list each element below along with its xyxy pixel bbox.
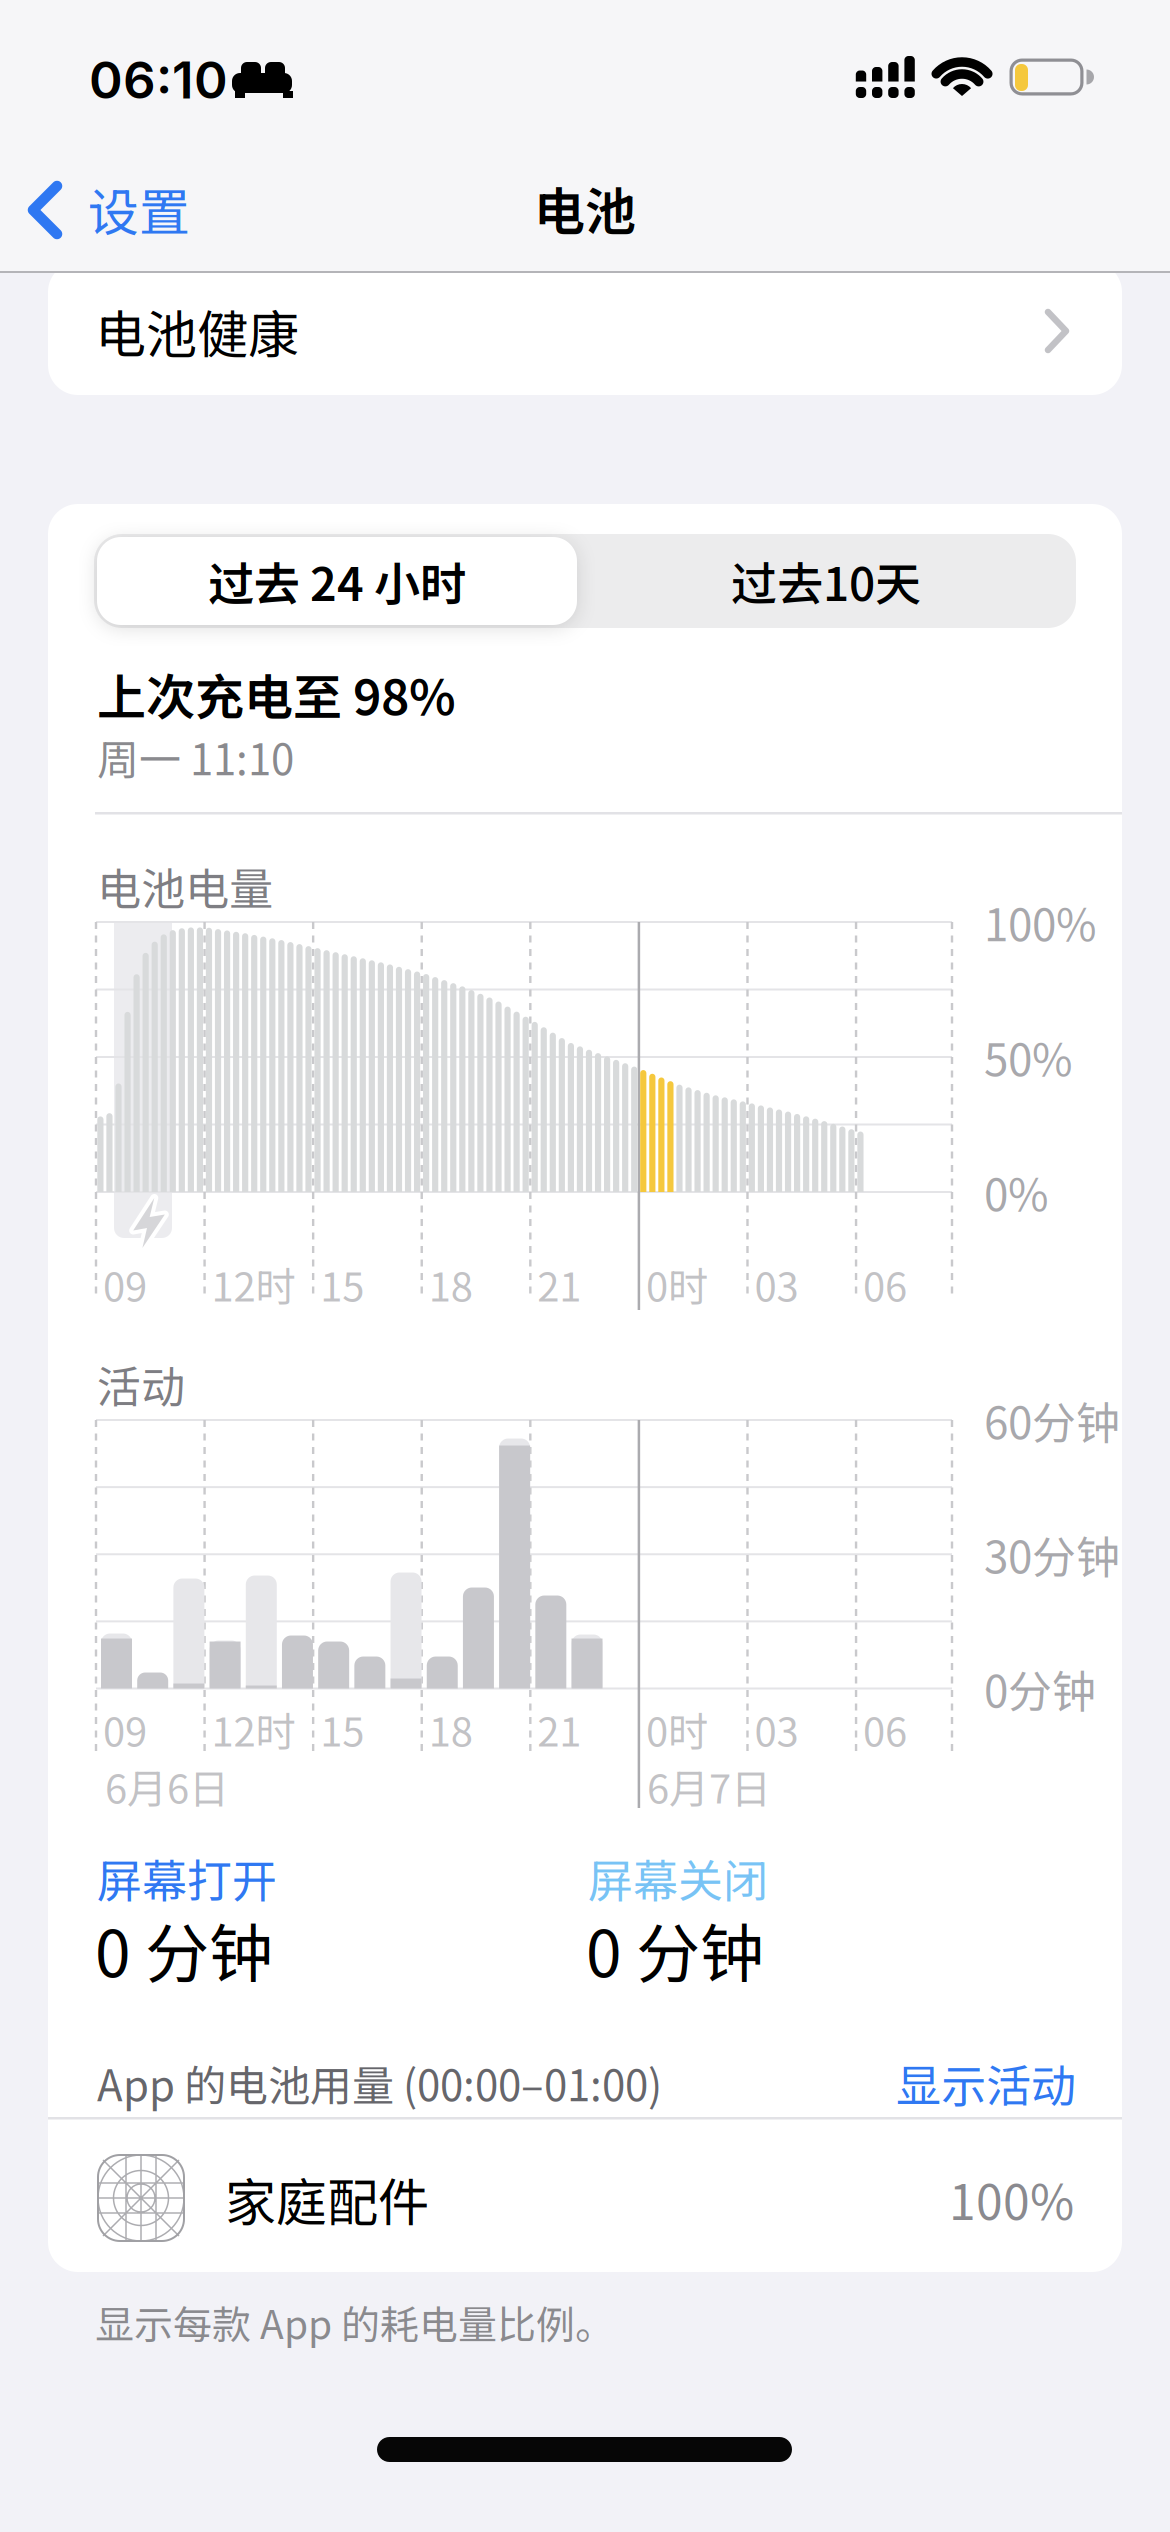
staticText: 0时 xyxy=(646,1700,708,1758)
staticText: 12时 xyxy=(212,1700,296,1758)
staticText: 18 xyxy=(429,1700,473,1758)
staticText: 15 xyxy=(320,1700,364,1758)
staticText: 06 xyxy=(863,1255,907,1313)
staticText: 家庭配件 xyxy=(225,2162,429,2236)
staticText: 0分钟 xyxy=(984,1657,1096,1720)
staticText: 60分钟 xyxy=(984,1388,1120,1452)
staticText: 显示活动 xyxy=(896,2050,1076,2116)
staticText: 03 xyxy=(754,1255,798,1313)
staticText: 12时 xyxy=(212,1255,296,1313)
staticText: App 的电池用量 (00:00–01:00) xyxy=(97,2053,662,2113)
staticText: 显示每款 App 的耗电量比例。 xyxy=(95,2294,614,2350)
staticText: 15 xyxy=(320,1255,364,1313)
staticText: 0 分钟 xyxy=(95,1903,273,1995)
staticText: 活动 xyxy=(97,1352,185,1416)
staticText: 6月7日 xyxy=(647,1757,771,1815)
staticText: 0 分钟 xyxy=(586,1903,764,1995)
staticText: 100% xyxy=(949,2164,1074,2234)
staticText: 上次充电至 98% xyxy=(97,658,456,729)
staticText: 100% xyxy=(984,890,1097,954)
button[interactable]: 显示活动 xyxy=(896,2050,1076,2116)
staticText: 21 xyxy=(537,1700,581,1758)
staticText: 0% xyxy=(984,1160,1049,1224)
staticText: 30分钟 xyxy=(984,1522,1120,1586)
staticText: 06:10 xyxy=(89,49,228,111)
staticText: 电池健康 xyxy=(95,294,299,368)
button[interactable]: 电池健康 xyxy=(48,262,1122,395)
staticText: 21 xyxy=(537,1255,581,1313)
staticText: 屏幕打开 xyxy=(97,1845,277,1911)
button[interactable]: 设置 xyxy=(15,171,205,247)
staticText: 0时 xyxy=(646,1255,708,1313)
staticText: 过去 24 小时 xyxy=(208,548,466,614)
staticText: 电池电量 xyxy=(97,854,273,918)
staticText: 06 xyxy=(863,1700,907,1758)
button[interactable]: 过去10天 xyxy=(586,537,1066,625)
staticText: 6月6日 xyxy=(105,1757,229,1815)
staticText: 电池 xyxy=(534,171,636,245)
staticText: 设置 xyxy=(88,172,190,246)
staticText: 过去10天 xyxy=(731,548,921,614)
button[interactable]: 家庭配件 xyxy=(48,2140,1122,2260)
staticText: 03 xyxy=(754,1700,798,1758)
button[interactable]: 过去 24 小时 xyxy=(97,537,577,625)
staticText: 09 xyxy=(103,1255,147,1313)
staticText: 18 xyxy=(429,1255,473,1313)
staticText: 09 xyxy=(103,1700,147,1758)
staticText: 50% xyxy=(984,1025,1073,1089)
staticText: 周一 11:10 xyxy=(97,727,294,787)
staticText: 屏幕关闭 xyxy=(588,1845,768,1911)
